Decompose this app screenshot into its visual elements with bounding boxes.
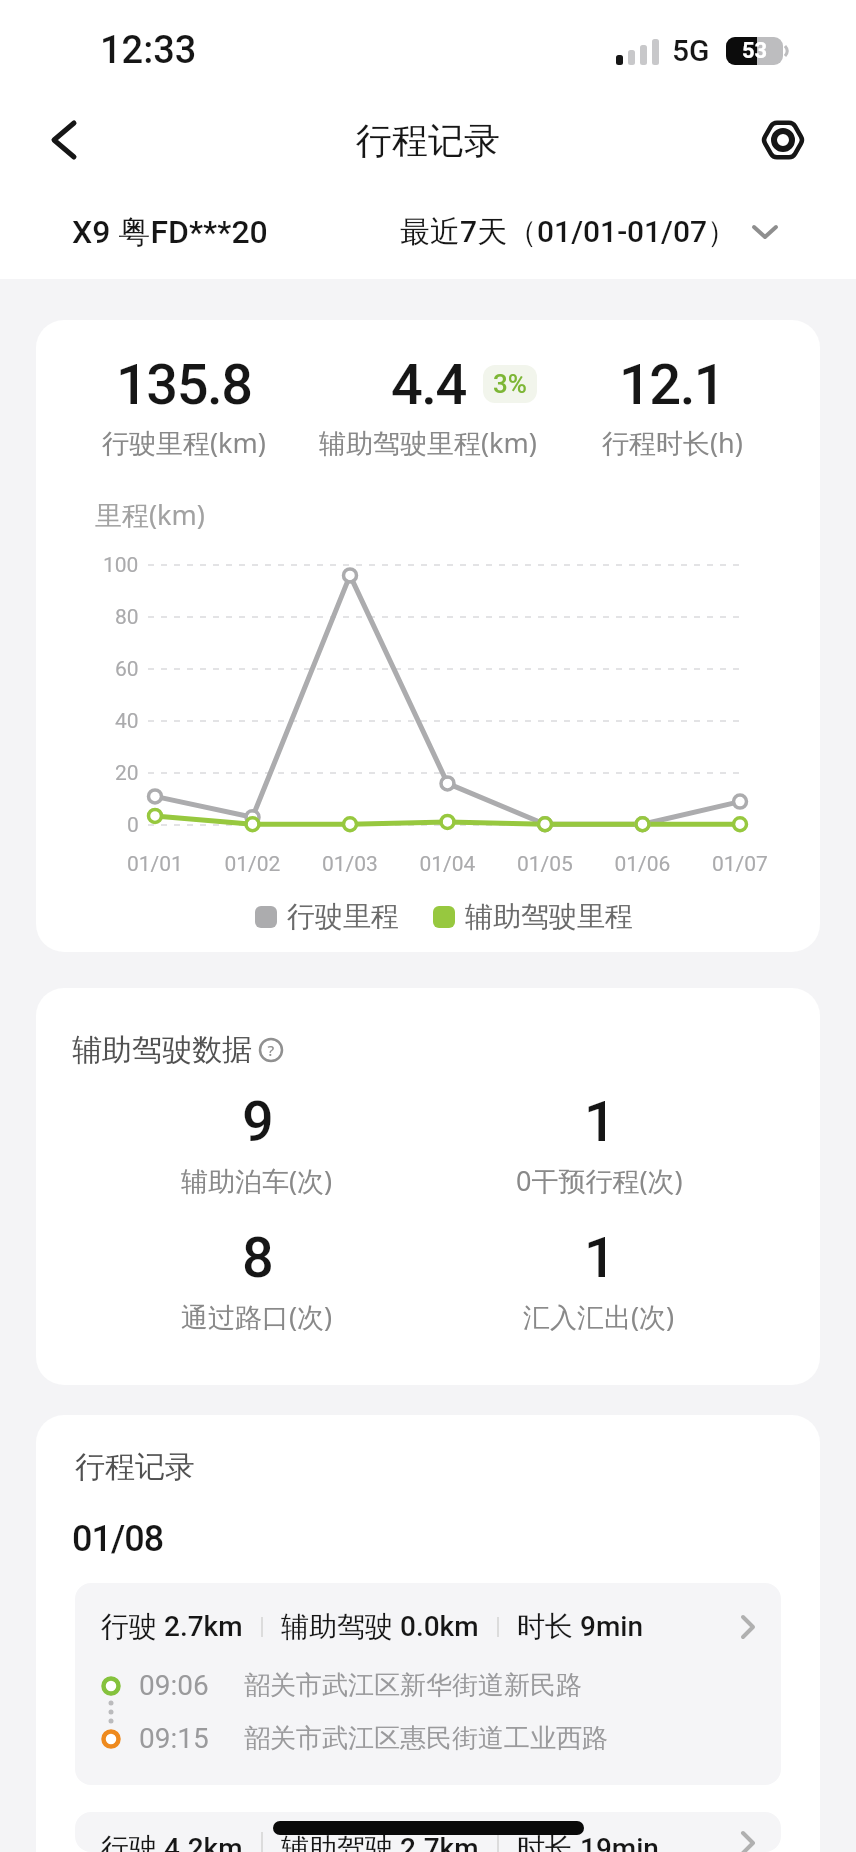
staticText: 09:06: [139, 1669, 209, 1702]
button[interactable]: 行驶 4.2km: [75, 1812, 781, 1852]
staticText: 09:15: [139, 1722, 209, 1755]
staticText: 01/08: [72, 1518, 164, 1560]
staticText: 行驶 4.2km: [101, 1831, 243, 1852]
staticText: 辅助泊车(次): [181, 1162, 333, 1199]
staticText: 53: [742, 38, 768, 64]
staticText: X9 粤FD***20: [72, 212, 268, 252]
staticText: 韶关市武江区惠民街道工业西路: [244, 1722, 608, 1755]
staticText: 辅助驾驶 2.7km: [281, 1831, 479, 1852]
staticText: 辅助驾驶数据: [72, 1031, 252, 1069]
staticText: 5G: [672, 33, 710, 68]
staticText: 1: [584, 1089, 615, 1155]
staticText: 时长 9min: [517, 1609, 643, 1644]
staticText: 里程(km): [95, 496, 205, 533]
button[interactable]: 行驶 2.7km: [75, 1583, 781, 1785]
staticText: 12:33: [100, 28, 197, 73]
staticText: 8: [242, 1225, 273, 1291]
staticText: 行程时长(h): [602, 424, 743, 461]
staticText: 行驶里程(km): [102, 424, 266, 461]
staticText: 行驶 2.7km: [101, 1609, 243, 1644]
staticText: 9: [242, 1089, 273, 1155]
staticText: 3%: [493, 369, 527, 399]
staticText: 辅助驾驶 0.0km: [281, 1609, 479, 1644]
button[interactable]: X9 粤FD***20: [72, 212, 268, 252]
staticText: 辅助驾驶里程(km): [319, 424, 537, 461]
staticText: 行程记录: [75, 1448, 195, 1486]
staticText: 辅助驾驶里程: [465, 899, 633, 934]
staticText: 汇入汇出(次): [523, 1298, 675, 1335]
staticText: 12.1: [619, 352, 725, 418]
staticText: 韶关市武江区新华街道新民路: [244, 1669, 582, 1702]
button[interactable]: [40, 116, 88, 164]
staticText: 4.4: [391, 352, 466, 418]
staticText: 通过路口(次): [181, 1298, 333, 1335]
staticText: 行驶里程: [287, 899, 399, 934]
staticText: 135.8: [116, 352, 252, 418]
button[interactable]: [758, 115, 808, 165]
staticText: 1: [584, 1225, 615, 1291]
staticText: 行程记录: [356, 118, 500, 163]
staticText: 时长 19min: [517, 1831, 659, 1852]
staticText: 0干预行程(次): [516, 1162, 683, 1199]
button[interactable]: 最近7天（01/01-01/07）: [400, 213, 778, 251]
staticText: 最近7天（01/01-01/07）: [400, 213, 738, 251]
